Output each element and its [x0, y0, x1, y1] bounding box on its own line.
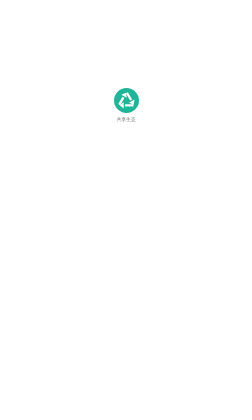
- other: App logo: [114, 88, 139, 113]
- staticText: 共享生态: [116, 116, 136, 122]
